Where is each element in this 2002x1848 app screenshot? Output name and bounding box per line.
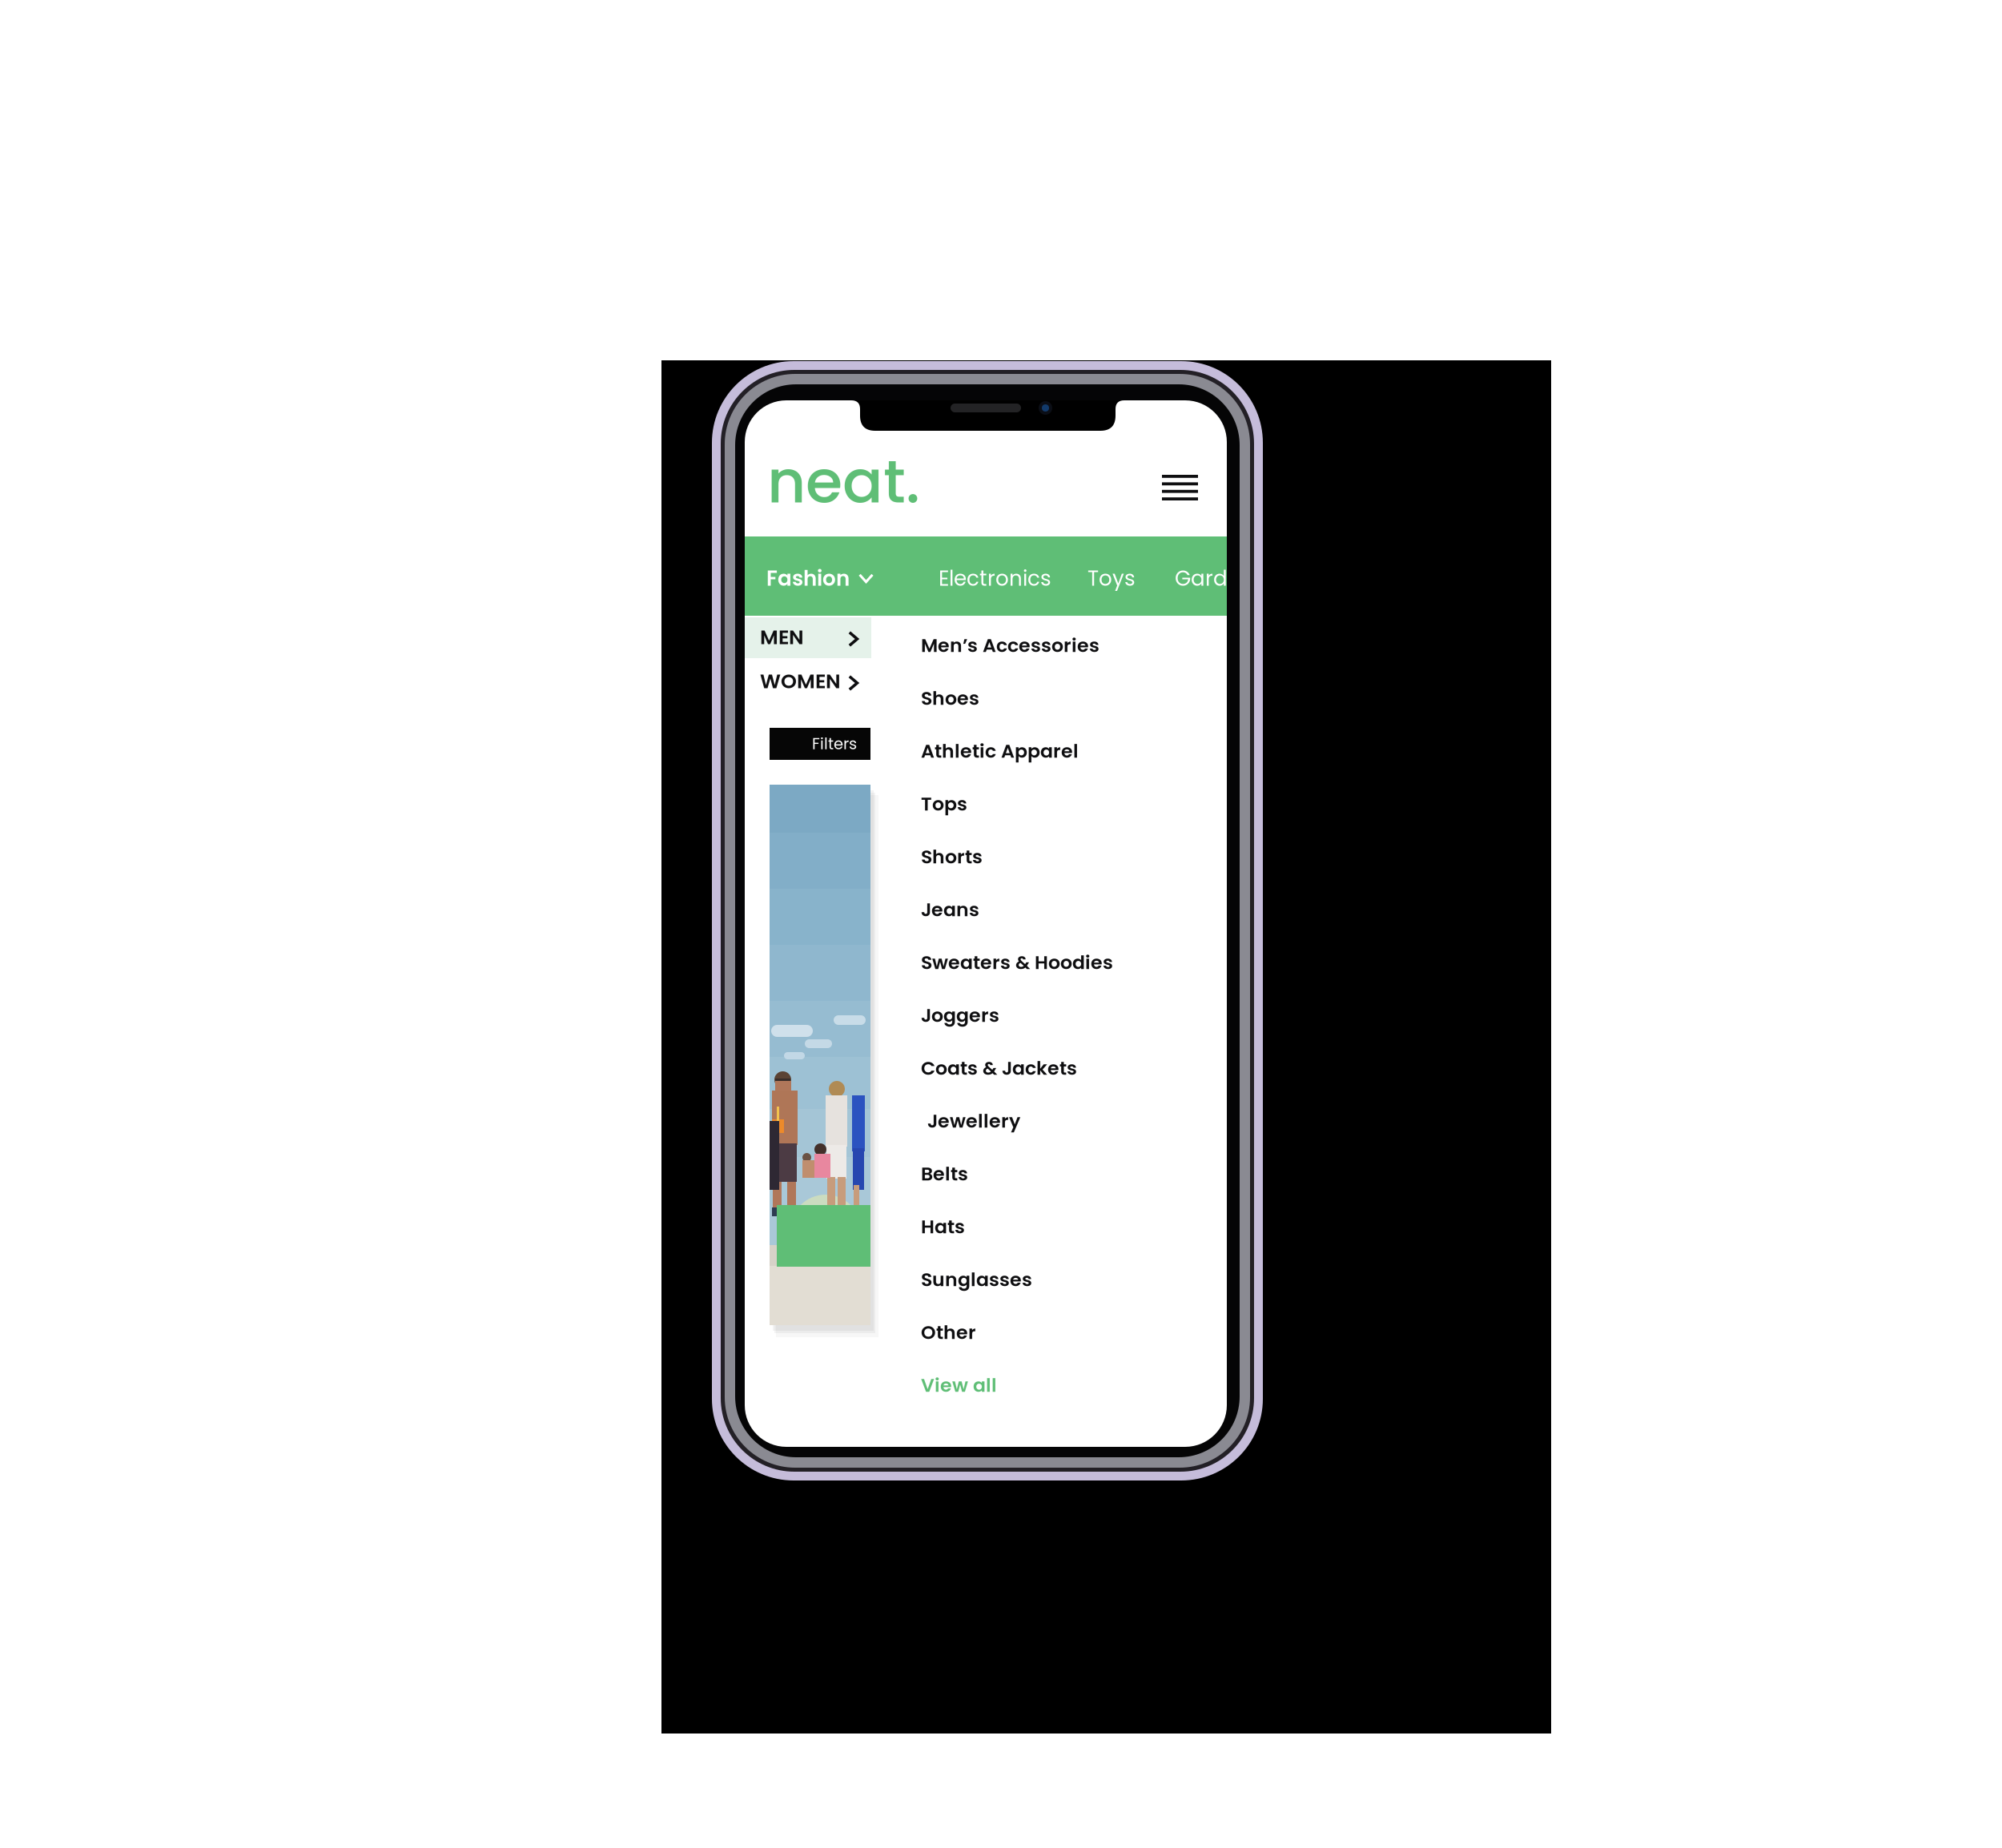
button[interactable]: Hats: [921, 1200, 1161, 1253]
button[interactable]: Sunglasses: [921, 1253, 1161, 1306]
button[interactable]: Fashion: [766, 536, 874, 620]
staticText: View all: [921, 1372, 997, 1398]
staticText: WOMEN: [760, 667, 841, 695]
button[interactable]: Jeans: [921, 883, 1161, 936]
button[interactable]: Shoes: [921, 672, 1161, 725]
button[interactable]: Athletic Apparel: [921, 725, 1161, 777]
staticText: Fashion: [766, 564, 850, 593]
button[interactable]: Joggers: [921, 989, 1161, 1042]
button[interactable]: Filters: [770, 728, 870, 760]
staticText: neat.: [767, 440, 920, 523]
staticText: Coats & Jackets: [921, 1055, 1077, 1081]
staticText: Men’s Accessories: [921, 632, 1099, 659]
button[interactable]: Tops: [921, 777, 1161, 830]
staticText: Tops: [921, 791, 967, 817]
staticText: Sweaters & Hoodies: [921, 949, 1113, 976]
staticText: Hats: [921, 1213, 965, 1240]
button[interactable]: Jewellery: [921, 1095, 1161, 1147]
staticText: Jeans: [921, 896, 979, 923]
button[interactable]: MEN: [745, 617, 871, 658]
button[interactable]: Men’s Accessories: [921, 619, 1161, 672]
staticText: Jewellery: [927, 1108, 1020, 1134]
staticText: Joggers: [921, 1002, 999, 1028]
button[interactable]: Gard: [1175, 536, 1228, 620]
button[interactable]: Coats & Jackets: [921, 1042, 1161, 1095]
button[interactable]: Electronics: [939, 536, 1051, 620]
staticText: Athletic Apparel: [921, 738, 1079, 764]
button[interactable]: Other: [921, 1306, 1161, 1359]
staticText: Electronics: [939, 564, 1051, 593]
staticText: Shorts: [921, 844, 983, 870]
staticText: Gard: [1175, 564, 1228, 593]
staticText: Filters: [812, 733, 857, 755]
button[interactable]: Toys: [1087, 536, 1136, 620]
staticText: Sunglasses: [921, 1266, 1032, 1293]
button[interactable]: Open menu: [1151, 464, 1209, 512]
staticText: Belts: [921, 1161, 968, 1187]
staticText: Toys: [1087, 564, 1136, 593]
staticText: Shoes: [921, 685, 979, 711]
button[interactable]: WOMEN: [745, 661, 871, 702]
button[interactable]: Sweaters & Hoodies: [921, 936, 1161, 989]
button[interactable]: Belts: [921, 1147, 1161, 1200]
button[interactable]: neat. home: [764, 432, 923, 531]
button[interactable]: View all: [921, 1359, 1161, 1412]
button[interactable]: Shorts: [921, 830, 1161, 883]
staticText: MEN: [760, 623, 804, 651]
staticText: Other: [921, 1319, 976, 1346]
